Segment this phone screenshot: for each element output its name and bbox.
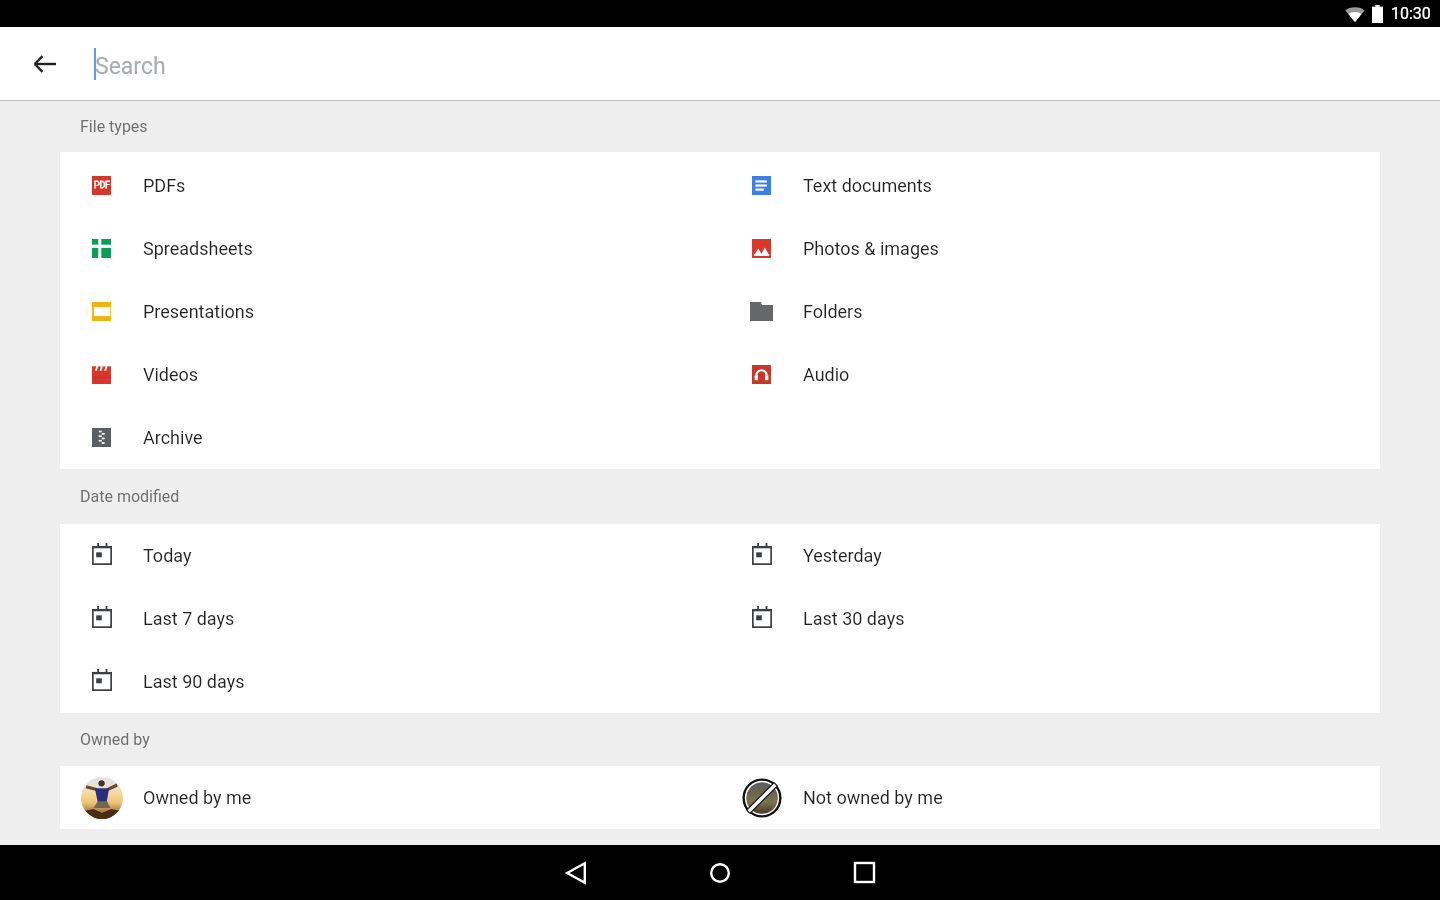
staticText: Search [95, 53, 166, 80]
staticText: Text documents [803, 175, 932, 196]
staticText: Archive [143, 427, 203, 448]
button[interactable]: Today [60, 524, 720, 587]
button[interactable]: Videos [60, 343, 720, 406]
button[interactable]: Presentations [60, 280, 720, 343]
staticText: Date modified [80, 487, 180, 506]
staticText: Not owned by me [803, 787, 943, 808]
button[interactable]: Back [540, 845, 612, 900]
staticText: Today [143, 545, 192, 566]
button[interactable]: Folders [720, 280, 1380, 343]
button[interactable]: Not owned by me [720, 766, 1380, 829]
staticText: Yesterday [803, 545, 882, 566]
staticText: Last 90 days [143, 671, 245, 692]
staticText: Owned by me [143, 787, 252, 808]
staticText: Photos & images [803, 238, 939, 259]
button[interactable]: Recents [828, 845, 900, 900]
staticText: File types [80, 117, 148, 136]
button[interactable]: Photos & images [720, 217, 1380, 280]
staticText: Audio [803, 364, 850, 385]
staticText: 10:30 [1391, 4, 1431, 23]
button[interactable]: Owned by me [60, 766, 720, 829]
button[interactable]: Spreadsheets [60, 217, 720, 280]
button[interactable]: Text documents [720, 154, 1380, 217]
staticText: PDFs [143, 175, 186, 196]
staticText: PDF [94, 180, 110, 191]
button[interactable]: Archive [60, 406, 720, 469]
staticText: Last 7 days [143, 608, 235, 629]
button[interactable]: Last 30 days [720, 587, 1380, 650]
button[interactable]: Audio [720, 343, 1380, 406]
button[interactable]: Last 90 days [60, 650, 720, 713]
button[interactable]: PDF [60, 154, 720, 217]
button[interactable]: Search [90, 27, 1440, 100]
button[interactable]: Yesterday [720, 524, 1380, 587]
button[interactable]: Back [0, 27, 90, 100]
button[interactable]: Home [684, 845, 756, 900]
button[interactable]: Last 7 days [60, 587, 720, 650]
staticText: Videos [143, 364, 199, 385]
staticText: Folders [803, 301, 863, 322]
staticText: Presentations [143, 301, 255, 322]
staticText: Spreadsheets [143, 238, 253, 259]
staticText: Last 30 days [803, 608, 905, 629]
staticText: Owned by [80, 730, 150, 749]
